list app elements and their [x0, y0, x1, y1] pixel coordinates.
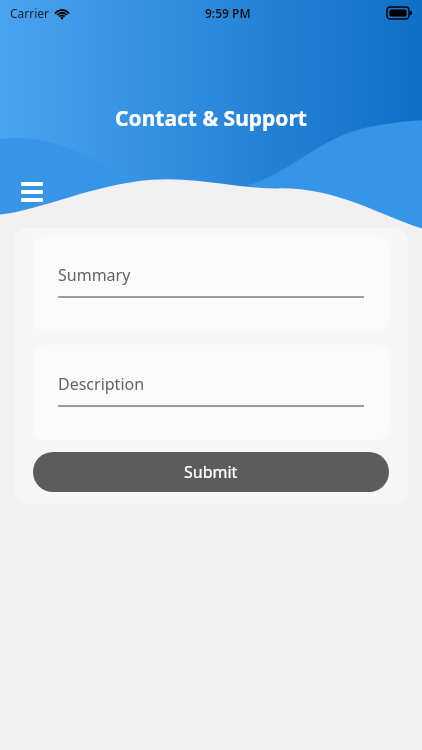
button[interactable]: Open navigation menu [12, 172, 52, 212]
staticText: Submit [184, 461, 238, 483]
button[interactable]: Summary [33, 236, 389, 331]
staticText: Contact & Support [115, 104, 307, 133]
button[interactable]: Description [33, 345, 389, 440]
staticText: Summary [58, 264, 131, 286]
staticText: Description [58, 373, 145, 395]
staticText: 9:59 PM [205, 5, 251, 21]
staticText: Carrier [10, 5, 50, 21]
button[interactable]: Submit [33, 452, 389, 492]
